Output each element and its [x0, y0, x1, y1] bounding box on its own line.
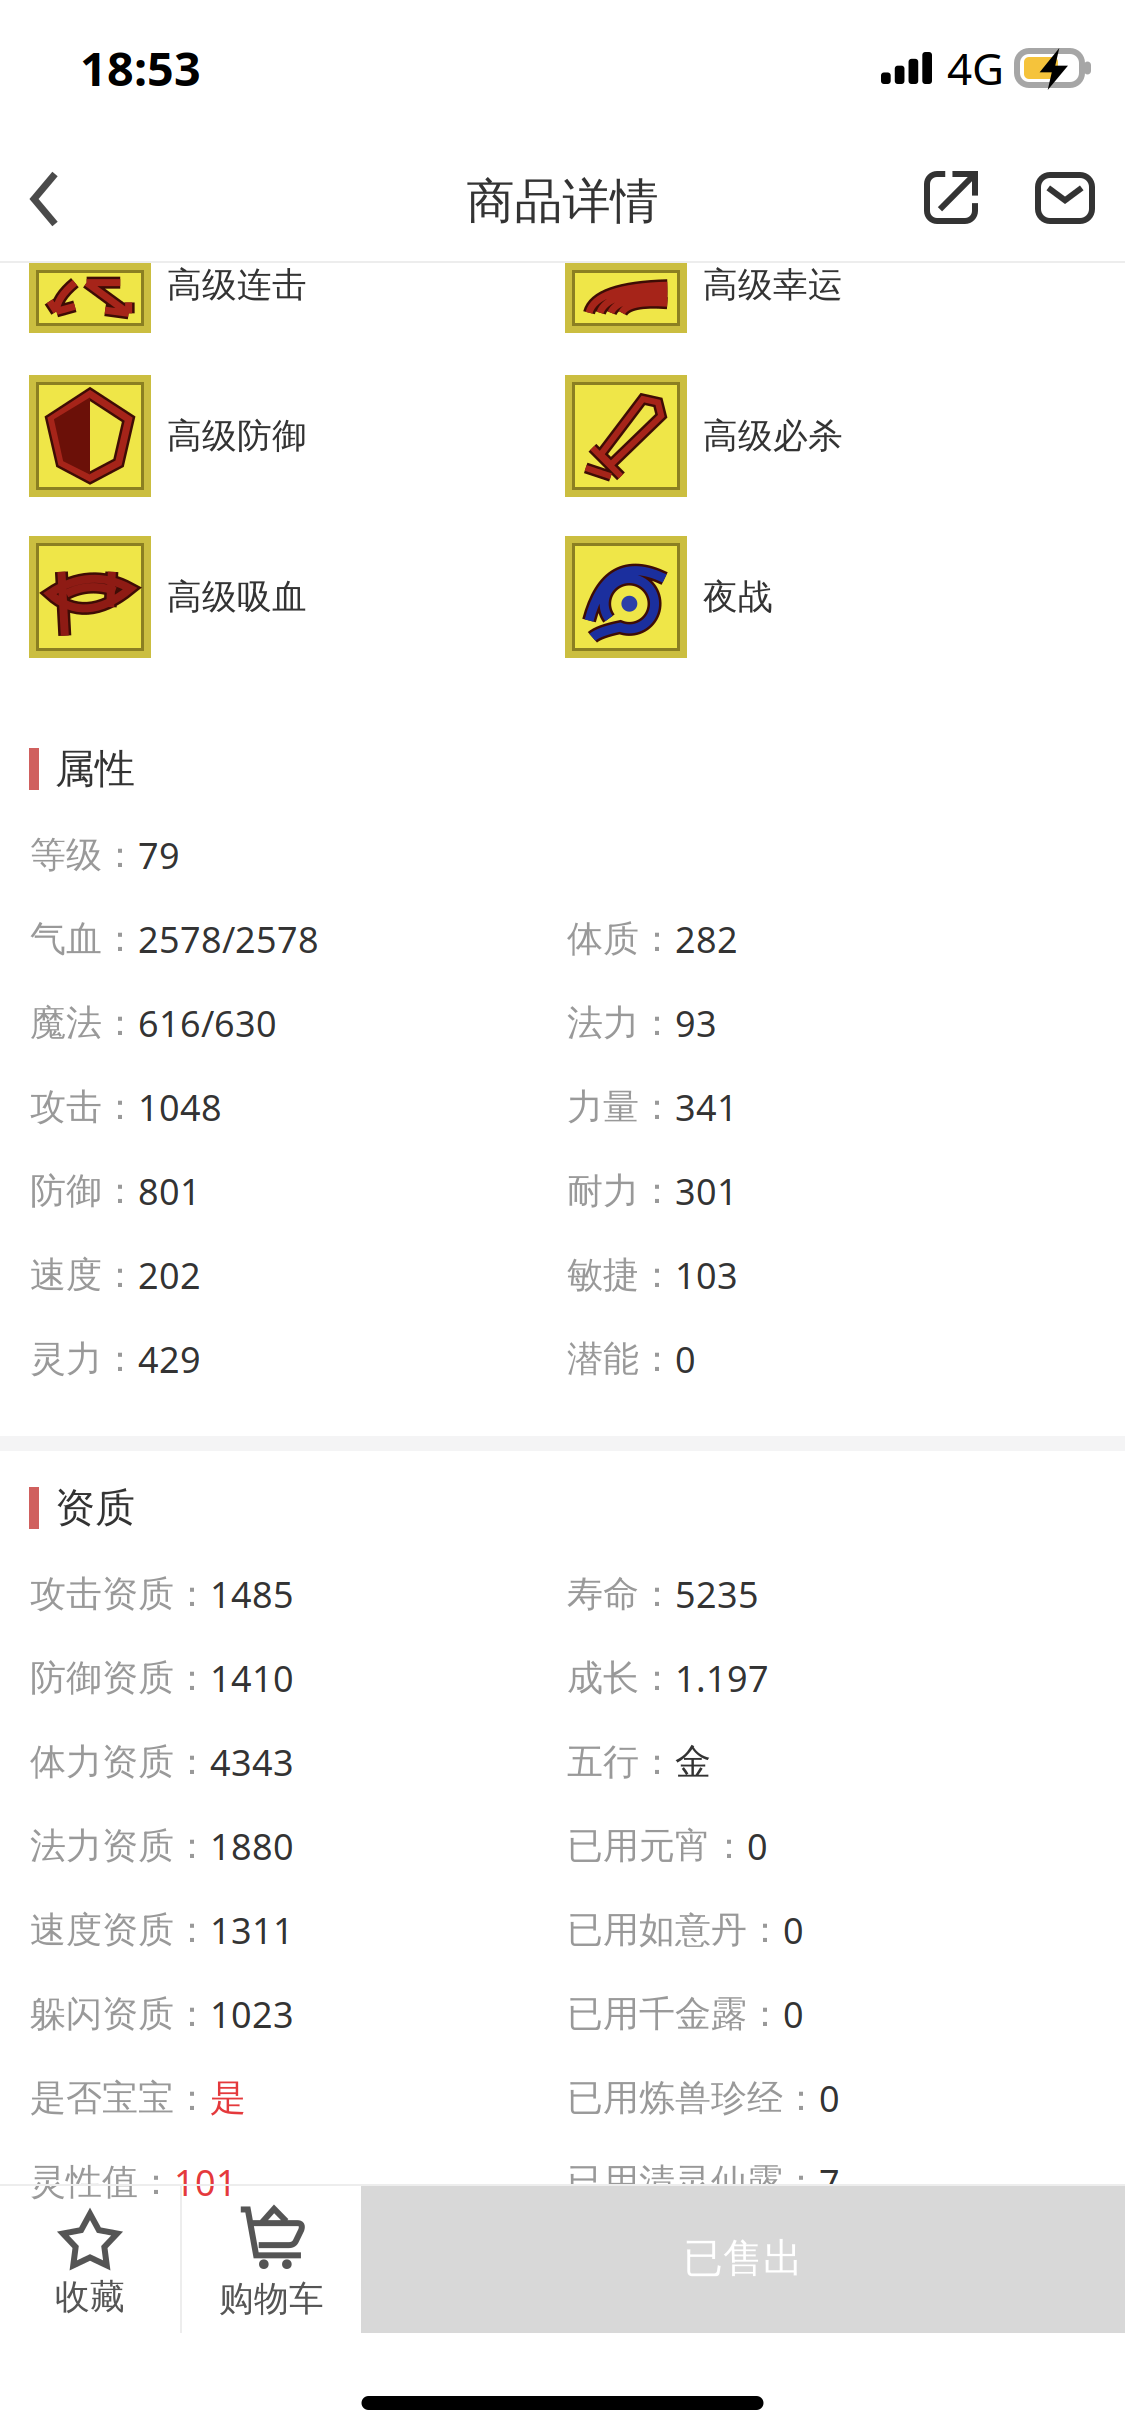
staticText: 成长：	[567, 1655, 675, 1701]
staticText: 攻击资质：	[30, 1571, 210, 1617]
staticText: 是否宝宝：	[30, 2075, 210, 2121]
staticText: 103	[675, 1250, 738, 1299]
staticText: 高级必杀	[703, 414, 843, 458]
staticText: 2578/2578	[138, 914, 319, 963]
button[interactable]: Messages	[1005, 110, 1125, 263]
staticText: 已用如意丹：	[567, 1907, 783, 1953]
staticText: 801	[138, 1166, 201, 1215]
staticText: 282	[675, 914, 738, 963]
staticText: 1880	[210, 1821, 294, 1870]
staticText: 潜能：	[567, 1336, 675, 1382]
staticText: 攻击：	[30, 1084, 138, 1130]
staticText: 341	[675, 1082, 738, 1131]
staticText: 18:53	[80, 36, 201, 100]
staticText: 夜战	[703, 575, 773, 619]
staticText: 已用炼兽珍经：	[567, 2075, 819, 2121]
staticText: 防御资质：	[30, 1655, 210, 1701]
staticText: 429	[138, 1334, 201, 1383]
staticText: 等级：	[30, 832, 138, 878]
staticText: 法力：	[567, 1000, 675, 1046]
staticText: 高级吸血	[167, 575, 307, 619]
staticText: 防御：	[30, 1168, 138, 1214]
staticText: 已用元宵：	[567, 1823, 747, 1869]
staticText: 收藏	[55, 2275, 125, 2319]
staticText: 高级幸运	[703, 263, 843, 307]
staticText: 202	[138, 1250, 201, 1299]
button[interactable]: 收藏	[0, 2184, 180, 2333]
staticText: 五行：	[567, 1739, 675, 1785]
staticText: 法力资质：	[30, 1823, 210, 1869]
staticText: 气血：	[30, 916, 138, 962]
staticText: 寿命：	[567, 1571, 675, 1617]
staticText: 购物车	[219, 2277, 324, 2321]
staticText: 高级防御	[167, 414, 307, 458]
staticText: 4G	[947, 38, 1004, 98]
staticText: 是	[210, 2075, 246, 2121]
staticText: 1048	[138, 1082, 222, 1131]
staticText: 1410	[210, 1653, 294, 1702]
staticText: 速度：	[30, 1252, 138, 1298]
button[interactable]: Back	[0, 110, 103, 263]
staticText: 7	[819, 2157, 840, 2206]
button[interactable]: 购物车	[182, 2184, 361, 2333]
staticText: 资质	[55, 1483, 135, 1533]
staticText: 0	[675, 1334, 696, 1383]
staticText: 0	[783, 1905, 804, 1954]
staticText: 力量：	[567, 1084, 675, 1130]
staticText: 躲闪资质：	[30, 1991, 210, 2037]
staticText: 商品详情	[466, 171, 658, 232]
staticText: 已用千金露：	[567, 1991, 783, 2037]
staticText: 0	[747, 1821, 768, 1870]
staticText: 已售出	[683, 2233, 803, 2284]
staticText: 灵性值：	[30, 2159, 174, 2205]
staticText: 属性	[55, 744, 135, 794]
staticText: 魔法：	[30, 1000, 138, 1046]
staticText: 5235	[675, 1569, 759, 1618]
staticText: 1023	[210, 1989, 294, 2038]
staticText: 金	[675, 1739, 711, 1785]
staticText: 高级连击	[167, 263, 307, 307]
staticText: 1311	[210, 1905, 294, 1954]
staticText: 301	[675, 1166, 738, 1215]
staticText: 速度资质：	[30, 1907, 210, 1953]
staticText: 616/630	[138, 998, 277, 1047]
button[interactable]: Share	[894, 110, 1005, 263]
staticText: 体质：	[567, 916, 675, 962]
staticText: 0	[819, 2073, 840, 2122]
staticText: 101	[174, 2157, 237, 2206]
staticText: 灵力：	[30, 1336, 138, 1382]
staticText: 已用清灵仙露：	[567, 2159, 819, 2205]
staticText: 1485	[210, 1569, 294, 1618]
staticText: 1.197	[675, 1653, 769, 1702]
staticText: 体力资质：	[30, 1739, 210, 1785]
staticText: 耐力：	[567, 1168, 675, 1214]
button[interactable]: 已售出	[361, 2184, 1125, 2333]
staticText: 93	[675, 998, 717, 1047]
staticText: 4343	[210, 1737, 294, 1786]
staticText: 敏捷：	[567, 1252, 675, 1298]
staticText: 0	[783, 1989, 804, 2038]
staticText: 79	[138, 830, 180, 879]
